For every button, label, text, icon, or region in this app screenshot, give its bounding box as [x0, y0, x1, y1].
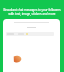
staticText: Broadcast chat messages to your follower…: [3, 8, 61, 15]
